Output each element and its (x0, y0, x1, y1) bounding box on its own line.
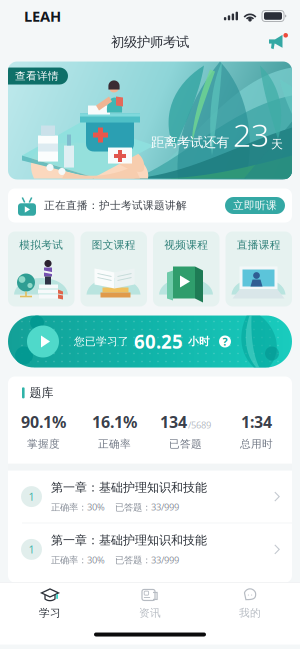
button[interactable]: 查看详情 (8, 61, 68, 84)
staticText: 模拟考试 (19, 238, 63, 252)
button[interactable]: 1 (8, 523, 292, 575)
staticText: 资讯 (139, 606, 161, 619)
staticText: 我的 (239, 606, 261, 619)
staticText: 掌握度 (27, 437, 60, 451)
staticText: 直播课程 (237, 238, 281, 252)
button[interactable]: 视频课程 (153, 231, 219, 306)
staticText: 图文课程 (92, 238, 136, 252)
staticText: 题库 (30, 385, 54, 400)
staticText: 正在直播：护士考试课题讲解 (44, 199, 187, 212)
staticText: 总用时 (240, 437, 273, 451)
staticText: 正确率：30% (51, 501, 105, 513)
staticText: 学习 (39, 606, 61, 619)
button[interactable]: 学习 (0, 583, 100, 624)
staticText: 1 (28, 489, 34, 504)
staticText: 23 (233, 113, 269, 155)
button[interactable]: 资讯 (100, 583, 200, 624)
staticText: 1 (28, 542, 34, 556)
staticText: 60.25 (134, 329, 183, 354)
staticText: 已答题：33/999 (115, 554, 179, 566)
staticText: 16.1% (92, 411, 137, 432)
staticText: 小时 (188, 335, 210, 348)
staticText: 视频课程 (164, 238, 208, 252)
staticText: 第一章：基础护理知识和技能 (51, 533, 207, 547)
button[interactable]: 模拟考试 (8, 231, 74, 306)
button[interactable]: 图文课程 (80, 231, 147, 306)
button[interactable]: 您已学习了 (0, 315, 300, 367)
staticText: 第一章：基础护理知识和技能 (51, 480, 207, 495)
button[interactable]: 直播课程 (225, 231, 292, 306)
staticText: 已答题 (169, 437, 202, 451)
staticText: 正确率 (98, 437, 131, 451)
button[interactable]: 1 (8, 471, 292, 523)
staticText: LEAH (24, 6, 61, 26)
button[interactable]: 公告 (261, 28, 295, 56)
staticText: 您已学习了 (74, 335, 129, 348)
staticText: ? (222, 334, 227, 349)
staticText: 查看详情 (15, 69, 59, 82)
staticText: 正确率：30% (51, 554, 105, 566)
button[interactable]: 我的 (200, 583, 300, 624)
staticText: 90.1% (21, 411, 66, 432)
staticText: 天 (271, 137, 283, 151)
staticText: 立即听课 (233, 199, 277, 212)
staticText: 134 (160, 411, 187, 432)
staticText: 初级护师考试 (111, 34, 189, 50)
staticText: 1:34 (241, 411, 272, 432)
staticText: /5689 (188, 419, 211, 431)
staticText: 距离考试还有 (151, 134, 229, 150)
button[interactable]: 正在直播：护士考试课题讲解 (0, 188, 300, 222)
staticText: 已答题：33/999 (115, 501, 179, 513)
